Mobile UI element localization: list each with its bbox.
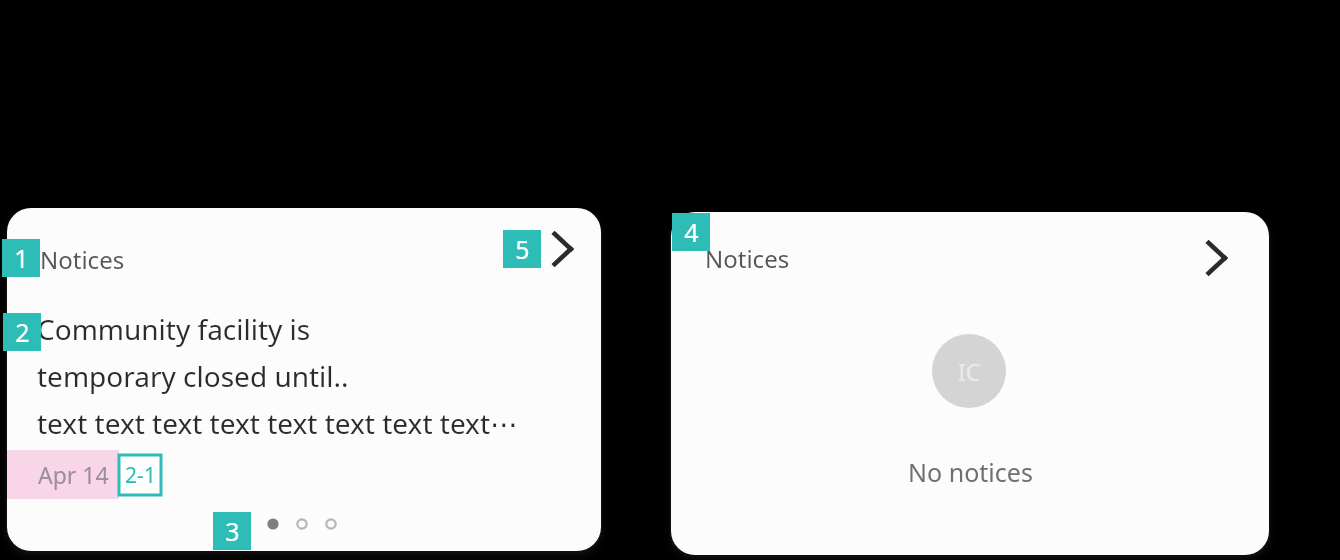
staticText: 3 (225, 514, 240, 548)
button[interactable]: Open notices (550, 231, 576, 267)
staticText: text text text text text text text text⋯ (37, 404, 519, 442)
button[interactable]: Notices (705, 240, 845, 276)
staticText: 1 (14, 241, 29, 275)
staticText: Apr 14 (38, 459, 109, 490)
staticText: Notices (705, 242, 790, 275)
button[interactable]: Notices (671, 212, 1269, 555)
staticText: No notices (908, 455, 1033, 489)
staticText: 2-1 (125, 461, 156, 490)
staticText: IC (958, 356, 981, 387)
button[interactable]: Notices (7, 208, 601, 551)
button[interactable]: Open notices (1204, 240, 1230, 276)
staticText: Notices (40, 243, 125, 276)
button[interactable]: Notices (40, 241, 180, 277)
staticText: Community facility is (37, 310, 311, 348)
staticText: temporary closed until.. (37, 357, 349, 395)
staticText: 4 (684, 215, 699, 249)
staticText: 5 (515, 232, 530, 266)
staticText: 2 (15, 315, 30, 349)
